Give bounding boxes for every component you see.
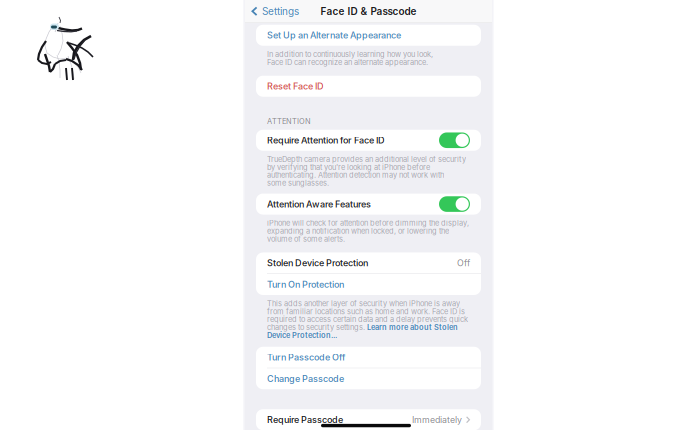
- staticText: Attention Aware Features: [267, 199, 371, 210]
- staticText: Set Up an Alternate Appearance: [267, 30, 401, 41]
- staticText: Face ID & Passcode: [320, 5, 416, 17]
- staticText: some sunglasses.: [267, 179, 329, 188]
- staticText: Turn On Protection: [267, 279, 344, 290]
- staticText: iPhone will check for attention before d…: [267, 219, 469, 228]
- staticText: In addition to continuously learning how…: [267, 50, 433, 59]
- button[interactable]: Set Up an Alternate Appearance: [256, 25, 481, 46]
- staticText: Device Protection...: [267, 331, 337, 340]
- staticText: This adds another layer of security when…: [267, 299, 460, 308]
- staticText: Turn Passcode Off: [267, 352, 345, 363]
- staticText: Stolen Device Protection: [267, 257, 368, 268]
- staticText: by verifying that you're looking at iPho…: [267, 163, 430, 172]
- staticText: Require Passcode: [267, 414, 343, 425]
- button[interactable]: Change Passcode: [256, 368, 481, 389]
- button[interactable]: Learn more about Stolen: [367, 323, 458, 332]
- button[interactable]: Settings: [243, 1, 299, 21]
- staticText: Settings: [262, 5, 299, 17]
- staticText: expanding a notification when locked, or…: [267, 226, 449, 235]
- staticText: Immediately: [412, 414, 462, 425]
- staticText: TrueDepth camera provides an additional …: [267, 155, 466, 164]
- button[interactable]: Device Protection...: [267, 331, 337, 340]
- button[interactable]: Turn On Protection: [256, 274, 481, 295]
- staticText: volume of some alerts.: [267, 234, 345, 243]
- staticText: authenticating. Attention detection may …: [267, 171, 444, 180]
- staticText: from familiar locations such as home and…: [267, 307, 465, 316]
- staticText: changes to security settings.: [267, 323, 367, 332]
- staticText: Require Attention for Face ID: [267, 135, 385, 146]
- button[interactable]: Turn Passcode Off: [256, 347, 481, 368]
- staticText: ATTENTION: [267, 117, 311, 126]
- button[interactable]: Reset Face ID: [256, 76, 481, 97]
- staticText: Change Passcode: [267, 373, 344, 384]
- staticText: Off: [457, 258, 470, 268]
- button[interactable]: Require Passcode: [256, 409, 481, 430]
- staticText: Learn more about Stolen: [367, 323, 458, 332]
- staticText: Reset Face ID: [267, 81, 324, 92]
- staticText: required to access certain data and a de…: [267, 315, 468, 324]
- staticText: Face ID can recognize an alternate appea…: [267, 58, 428, 67]
